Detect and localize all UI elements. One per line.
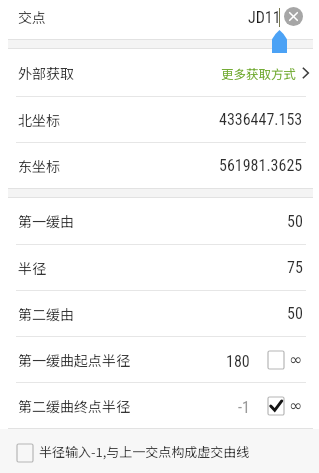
- button[interactable]: 东坐标: [0, 143, 319, 188]
- staticText: ∞: [289, 396, 303, 415]
- staticText: 第一缓由: [18, 211, 74, 231]
- staticText: 外部获取: [18, 63, 74, 83]
- button[interactable]: Unchecked option: [0, 429, 319, 473]
- staticText: 交点: [18, 7, 46, 27]
- staticText: 50: [287, 212, 303, 231]
- staticText: 东坐标: [18, 156, 60, 176]
- button[interactable]: 第一缓由: [0, 198, 319, 244]
- button[interactable]: 半径: [0, 245, 319, 290]
- staticText: 第二缓由: [18, 304, 74, 324]
- staticText: 50: [287, 304, 303, 323]
- button[interactable]: Checked option: [268, 397, 284, 415]
- staticText: 第一缓曲起点半径: [18, 350, 130, 370]
- button[interactable]: 第二缓由: [0, 291, 319, 336]
- button[interactable]: 北坐标: [0, 97, 319, 142]
- button[interactable]: 第一缓曲起点半径: [0, 337, 319, 382]
- staticText: 更多获取方式: [221, 64, 297, 82]
- staticText: 4336447.153: [219, 110, 303, 129]
- staticText: 75: [287, 258, 303, 277]
- staticText: 半径输入-1,与上一交点构成虚交由线: [39, 442, 250, 461]
- staticText: ∞: [289, 350, 303, 369]
- staticText: 半径: [18, 258, 46, 278]
- staticText: 北坐标: [18, 110, 60, 130]
- staticText: JD11: [248, 8, 281, 27]
- staticText: 561981.3625: [219, 156, 303, 175]
- staticText: -1: [238, 398, 250, 417]
- staticText: 第二缓曲终点半径: [18, 396, 130, 416]
- button[interactable]: Clear text: [284, 7, 303, 26]
- button[interactable]: Unchecked option: [17, 444, 33, 462]
- staticText: 180: [226, 352, 250, 371]
- button[interactable]: 外部获取: [0, 49, 319, 96]
- button[interactable]: Unchecked option: [268, 351, 284, 369]
- button[interactable]: 第二缓曲终点半径: [0, 383, 319, 428]
